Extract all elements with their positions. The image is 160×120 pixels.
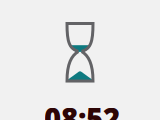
staticText: 08:52: [44, 99, 120, 120]
